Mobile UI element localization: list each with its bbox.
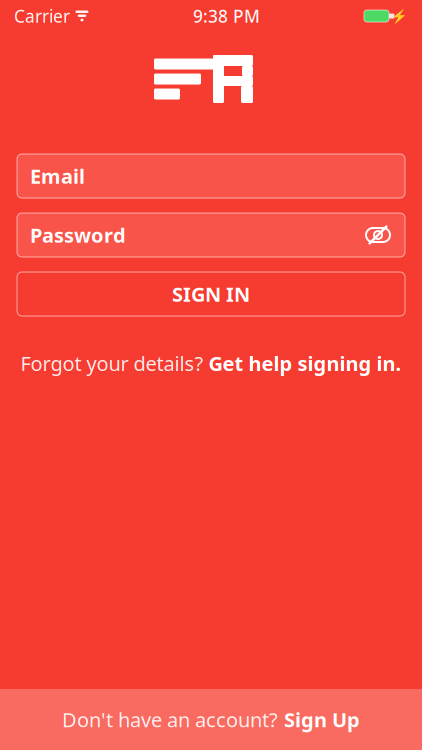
staticText: Forgot your details? <box>20 350 203 377</box>
staticText: Password <box>30 222 126 248</box>
staticText: ⚡ <box>391 8 408 24</box>
staticText: Sign Up <box>284 706 360 733</box>
button[interactable]: Password <box>17 213 405 257</box>
staticText: Email <box>30 163 85 189</box>
button[interactable]: Don't have an account? <box>0 689 422 750</box>
staticText: SIGN IN <box>172 281 250 307</box>
staticText: Carrier <box>14 4 70 27</box>
button[interactable]: SIGN IN <box>17 272 405 316</box>
staticText: Get help signing in. <box>208 350 401 377</box>
button[interactable]: Forgot your details? <box>4 344 417 383</box>
staticText: Don't have an account? <box>62 706 278 733</box>
staticText: 9:38 PM <box>193 4 260 27</box>
button[interactable]: Email <box>17 154 405 198</box>
